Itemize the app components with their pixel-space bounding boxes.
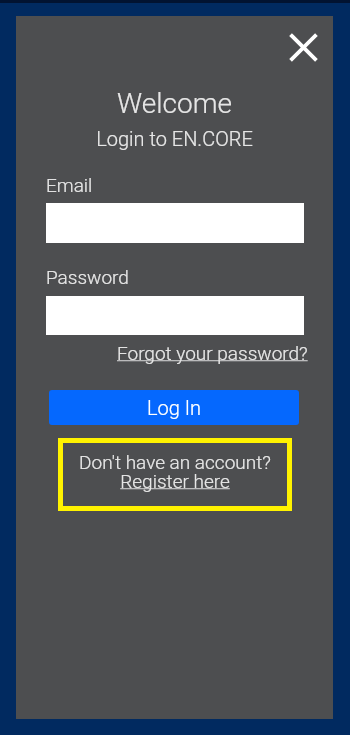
staticText: Email [46, 174, 93, 196]
staticText: Log In [147, 396, 202, 419]
staticText: Don't have an account? [58, 451, 292, 473]
button[interactable]: Close [277, 21, 330, 74]
staticText: Password [46, 266, 129, 288]
staticText: Welcome [16, 87, 333, 120]
button[interactable]: Log In [49, 390, 299, 425]
staticText: Register here [58, 470, 292, 492]
button[interactable]: Forgot your password? [117, 342, 308, 364]
button[interactable]: Don't have an account? [58, 438, 292, 511]
staticText: Login to EN.CORE [16, 127, 333, 150]
